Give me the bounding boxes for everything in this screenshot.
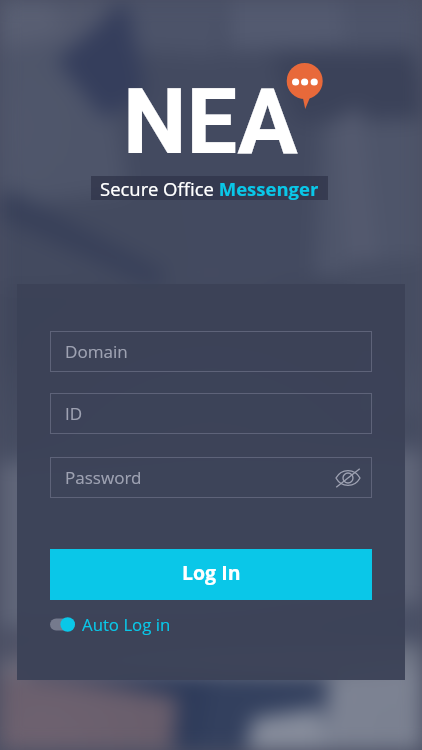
staticText: Log In [182, 559, 241, 586]
staticText: ID [65, 402, 83, 425]
button[interactable]: Auto Log in [47, 609, 171, 639]
staticText: Auto Log in [82, 613, 171, 636]
staticText: NEA [123, 70, 298, 175]
staticText: Password [65, 466, 142, 489]
button[interactable]: Password [50, 457, 372, 498]
other: Show password [335, 465, 361, 491]
button[interactable]: Domain [50, 331, 372, 372]
staticText: Secure Office Messenger [100, 176, 319, 200]
staticText: Domain [65, 340, 128, 363]
button[interactable]: Log In [50, 549, 372, 600]
button[interactable]: ID [50, 393, 372, 434]
